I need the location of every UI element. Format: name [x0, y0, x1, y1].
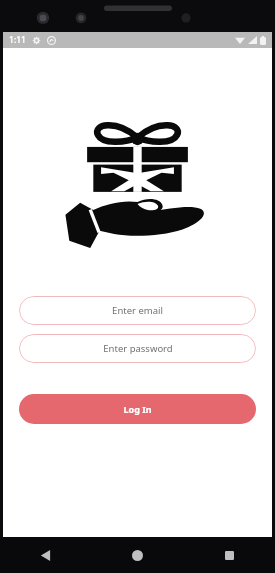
button[interactable]: Recent apps [183, 537, 275, 573]
button[interactable]: Enter password [19, 334, 256, 363]
staticText: Enter password [103, 342, 173, 355]
staticText: Log In [123, 403, 152, 415]
staticText: 1:11 [9, 34, 26, 46]
button[interactable]: Back [0, 537, 91, 573]
button[interactable]: Enter email [19, 296, 256, 325]
other: Gift in hand logo [60, 117, 215, 250]
staticText: Enter email [112, 304, 163, 317]
button[interactable]: Log In [19, 394, 256, 424]
button[interactable]: Home [91, 537, 183, 573]
